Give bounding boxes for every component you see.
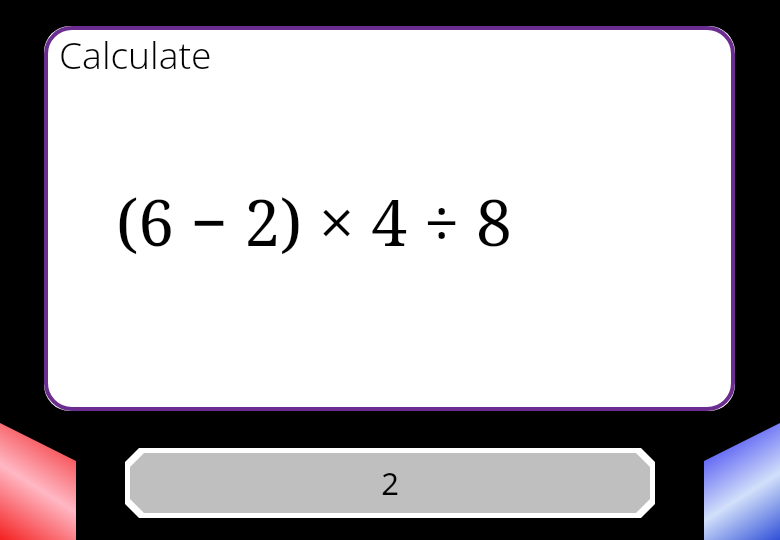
staticText: 2 [381,462,399,504]
staticText: Calculate [59,29,212,79]
button[interactable]: Answer 2 [125,448,655,518]
staticText: (6 − 2) × 4 ÷ 8 [116,178,512,265]
